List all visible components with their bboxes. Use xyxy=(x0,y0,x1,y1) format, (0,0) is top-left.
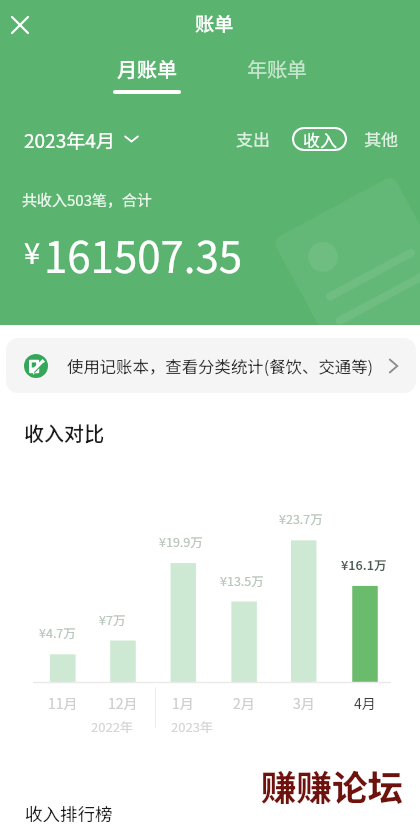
button[interactable]: 其他 xyxy=(364,126,398,151)
staticText: 账单 xyxy=(195,9,234,37)
staticText: 2023年4月 xyxy=(24,126,115,151)
staticText: ¥16.1万 xyxy=(341,555,387,573)
staticText: 12月 xyxy=(108,693,138,713)
staticText: 月账单 xyxy=(117,54,177,83)
staticText: 1月 xyxy=(172,693,194,713)
staticText: 11月 xyxy=(48,693,78,713)
staticText: 收入 xyxy=(303,127,337,151)
button[interactable]: 月账单 xyxy=(103,54,191,94)
staticText: 其他 xyxy=(364,126,398,151)
staticText: ¥13.5万 xyxy=(220,571,264,589)
staticText: 年账单 xyxy=(247,54,307,83)
staticText: 4月 xyxy=(354,693,376,713)
staticText: 2月 xyxy=(233,693,255,713)
staticText: 2022年 xyxy=(91,717,133,736)
button[interactable]: 使用记账本，查看分类统计(餐饮、交通等) xyxy=(6,338,416,393)
staticText: 共收入503笔，合计 xyxy=(22,189,152,211)
staticText: 支出 xyxy=(236,126,270,151)
staticText: 3月 xyxy=(293,693,315,713)
staticText: ¥19.9万 xyxy=(159,532,203,550)
button[interactable]: 2023年4月 xyxy=(24,126,139,151)
staticText: ¥ xyxy=(24,230,41,272)
staticText: 使用记账本，查看分类统计(餐饮、交通等) xyxy=(67,354,374,378)
staticText: ¥4.7万 xyxy=(39,623,76,641)
staticText: 收入排行榜 xyxy=(25,801,113,826)
staticText: 收入对比 xyxy=(24,418,104,447)
staticText: ¥23.7万 xyxy=(279,509,323,527)
button[interactable]: 支出 xyxy=(236,126,270,151)
staticText: ¥7万 xyxy=(99,610,126,628)
button[interactable]: Close xyxy=(3,8,36,41)
button[interactable]: 年账单 xyxy=(247,54,307,83)
staticText: 161507.35 xyxy=(44,224,243,285)
staticText: 2023年 xyxy=(171,717,213,736)
staticText: 赚赚论坛 xyxy=(261,760,404,811)
button[interactable]: 收入 xyxy=(292,127,347,151)
